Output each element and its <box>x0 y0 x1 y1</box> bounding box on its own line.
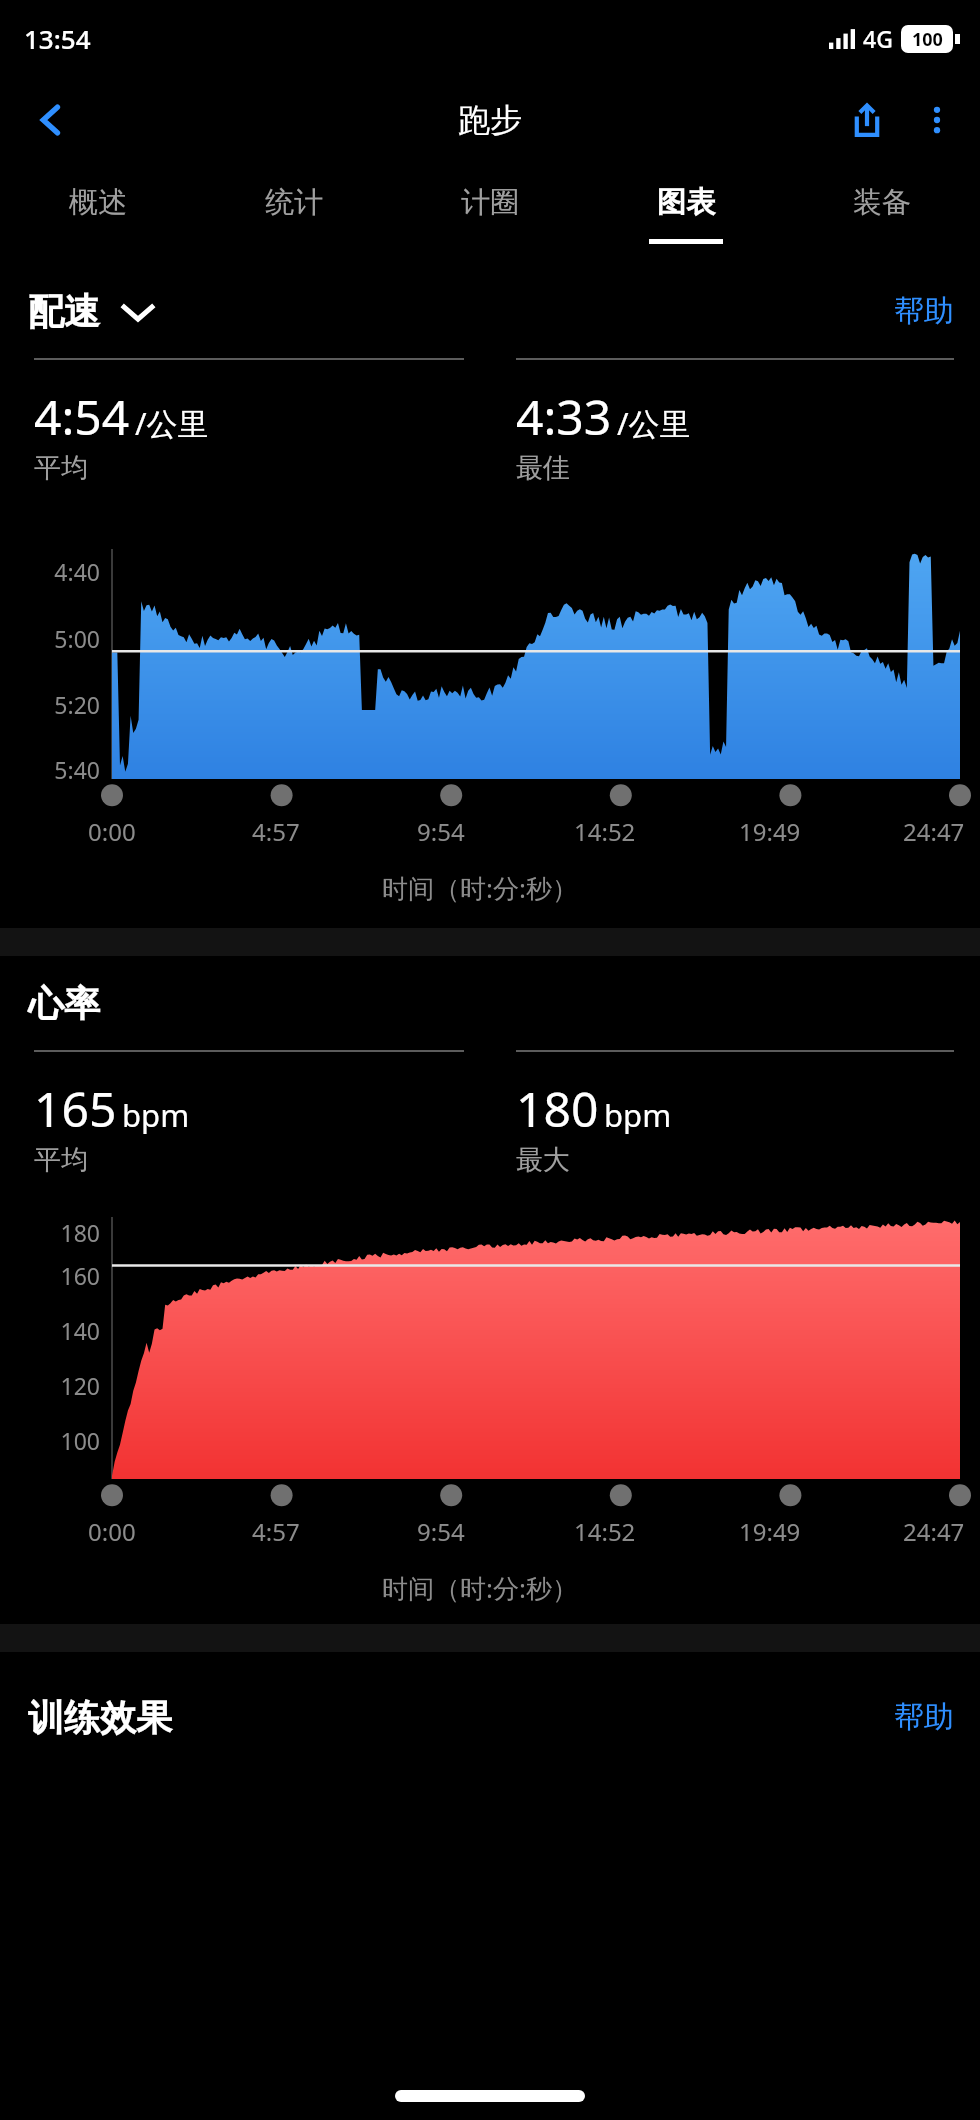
button[interactable]: 帮助 <box>884 282 964 340</box>
staticText: 平均 <box>34 1143 88 1177</box>
staticText: 帮助 <box>894 1698 954 1736</box>
staticText: 14:52 <box>574 815 636 848</box>
staticText: 5:20 <box>0 689 100 720</box>
staticText: 装备 <box>853 184 911 221</box>
staticText: 4:57 <box>252 815 300 848</box>
button[interactable]: 概述 <box>0 164 196 264</box>
staticText: 24:47 <box>903 815 965 848</box>
button[interactable]: 统计 <box>196 164 392 264</box>
staticText: 100 <box>912 27 943 52</box>
staticText: 时间（时:分:秒） <box>0 870 960 906</box>
staticText: 140 <box>0 1315 100 1346</box>
staticText: 4:54 <box>34 384 130 449</box>
staticText: 160 <box>0 1260 100 1291</box>
staticText: 5:40 <box>0 754 100 779</box>
staticText: 4:33 <box>516 384 612 449</box>
staticText: 计圈 <box>461 184 519 221</box>
staticText: 统计 <box>265 184 323 221</box>
staticText: 165 <box>34 1076 117 1141</box>
staticText: /公里 <box>617 402 691 444</box>
staticText: 9:54 <box>417 1515 465 1548</box>
staticText: 14:52 <box>574 1515 636 1548</box>
button[interactable]: 配速 <box>28 289 156 334</box>
staticText: 19:49 <box>739 815 801 848</box>
staticText: 跑步 <box>458 100 522 140</box>
button[interactable]: Back <box>16 85 86 155</box>
staticText: 9:54 <box>417 815 465 848</box>
button[interactable]: 图表 <box>588 164 784 264</box>
staticText: bpm <box>122 1094 190 1136</box>
staticText: 4:40 <box>0 556 100 587</box>
staticText: bpm <box>604 1094 672 1136</box>
staticText: 180 <box>0 1217 100 1248</box>
staticText: 配速 <box>28 289 100 334</box>
staticText: /公里 <box>135 402 209 444</box>
button[interactable]: Share <box>832 85 902 155</box>
staticText: 时间（时:分:秒） <box>0 1570 960 1606</box>
staticText: 训练效果 <box>28 1695 172 1740</box>
staticText: 13:54 <box>24 21 91 56</box>
staticText: 平均 <box>34 451 88 485</box>
staticText: 4:57 <box>252 1515 300 1548</box>
button[interactable]: 帮助 <box>884 1688 964 1746</box>
staticText: 帮助 <box>894 292 954 330</box>
button[interactable]: 计圈 <box>392 164 588 264</box>
staticText: 最大 <box>516 1143 570 1177</box>
staticText: 24:47 <box>903 1515 965 1548</box>
staticText: 心率 <box>28 981 100 1026</box>
button[interactable]: 装备 <box>784 164 980 264</box>
staticText: 图表 <box>657 184 715 221</box>
staticText: 5:00 <box>0 623 100 654</box>
staticText: 4G <box>863 23 893 54</box>
staticText: 100 <box>0 1425 100 1456</box>
staticText: 0:00 <box>88 1515 136 1548</box>
staticText: 120 <box>0 1370 100 1401</box>
staticText: 最佳 <box>516 451 570 485</box>
button[interactable]: More options <box>902 85 972 155</box>
staticText: 19:49 <box>739 1515 801 1548</box>
staticText: 概述 <box>69 184 127 221</box>
staticText: 0:00 <box>88 815 136 848</box>
staticText: 180 <box>516 1076 599 1141</box>
